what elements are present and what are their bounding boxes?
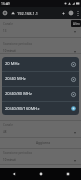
staticText: 20/40 MHz: [5, 76, 26, 82]
button[interactable]: Settings: [67, 7, 75, 19]
button[interactable]: Add: [59, 7, 67, 19]
staticText: Aggiorna: [36, 141, 51, 145]
staticText: Scansione periodica: [3, 42, 32, 46]
staticText: 48: [3, 130, 7, 134]
staticText: 20 MHz: [5, 61, 20, 67]
staticText: Altro: [73, 22, 80, 26]
button[interactable]: More options: [75, 7, 81, 19]
button[interactable]: Navigate up: [1, 7, 9, 19]
staticText: 20/40/80/160MHz: [5, 106, 40, 112]
staticText: Canale: [3, 22, 13, 26]
button[interactable]: 20/40 MHz: [2, 72, 79, 86]
button[interactable]: Canale: [0, 20, 81, 36]
button[interactable]: Scansione periodica: [0, 149, 81, 165]
button[interactable]: Aggiorna: [34, 139, 53, 147]
staticText: 16:49: [1, 1, 10, 6]
staticText: 20/40/80 MHz: [5, 91, 32, 97]
button[interactable]: Home: [27, 168, 54, 180]
staticText: 13: [3, 29, 7, 33]
staticText: 10 minuti: [3, 49, 16, 53]
staticText: 10 minuti: [3, 158, 16, 162]
staticText: Canale: [3, 123, 13, 127]
staticText: Scansione periodica: [3, 151, 32, 155]
button[interactable]: Scansione periodica: [0, 40, 81, 56]
button[interactable]: 20 MHz: [2, 57, 79, 71]
button[interactable]: Back: [0, 168, 27, 180]
button[interactable]: 20/40/80/160MHz: [2, 102, 79, 115]
button[interactable]: 20/40/80 MHz: [2, 87, 79, 101]
button[interactable]: Recent apps: [54, 168, 81, 180]
staticText: 192.168.1.1: [17, 11, 38, 16]
